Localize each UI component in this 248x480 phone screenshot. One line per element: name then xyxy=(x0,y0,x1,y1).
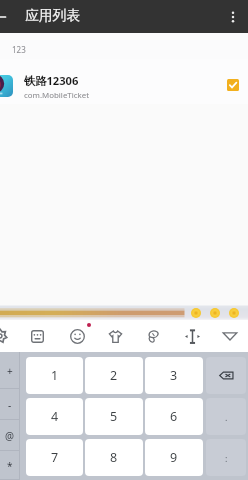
staticText: 3 xyxy=(170,367,178,384)
button[interactable]: Assistant xyxy=(22,320,52,352)
button[interactable]: Candidate 2 xyxy=(210,308,220,318)
staticText: . xyxy=(225,411,228,423)
button[interactable]: 7 xyxy=(26,439,83,476)
staticText: 4 xyxy=(51,408,59,425)
button[interactable]: - xyxy=(0,389,19,420)
staticText: @ xyxy=(5,429,14,443)
staticText: 应用列表 xyxy=(25,7,81,24)
button[interactable]: More options xyxy=(218,2,248,32)
button[interactable]: Handwriting xyxy=(138,320,168,352)
staticText: - xyxy=(8,398,12,412)
staticText: 2 xyxy=(110,367,118,384)
button[interactable]: 3 xyxy=(145,357,203,394)
button[interactable]: Back xyxy=(0,2,13,32)
staticText: 9 xyxy=(170,449,178,466)
staticText: 5 xyxy=(110,408,118,425)
button[interactable]: Backspace xyxy=(206,357,246,394)
button[interactable]: Candidate 3 xyxy=(229,308,239,318)
staticText: 铁路12306 xyxy=(24,73,79,88)
staticText: 1 xyxy=(51,367,59,384)
button[interactable]: 5 xyxy=(85,398,143,435)
button[interactable]: Selected xyxy=(221,73,245,97)
button[interactable]: Emoji xyxy=(62,320,92,352)
button[interactable]: @ xyxy=(0,420,19,451)
button[interactable]: * xyxy=(0,451,19,480)
staticText: com.MobileTicket xyxy=(24,90,90,101)
staticText: 7 xyxy=(51,449,59,466)
button[interactable]: 铁路12306 xyxy=(0,59,248,104)
button[interactable]: 8 xyxy=(85,439,143,476)
button[interactable]: Hide keyboard xyxy=(215,320,245,352)
button[interactable]: 4 xyxy=(26,398,83,435)
staticText: * xyxy=(7,459,13,473)
staticText: : xyxy=(225,452,228,464)
staticText: 8 xyxy=(110,449,118,466)
button[interactable]: Move cursor xyxy=(177,320,207,352)
button[interactable]: 2 xyxy=(85,357,143,394)
button[interactable]: 6 xyxy=(145,398,203,435)
button[interactable]: 1 xyxy=(26,357,83,394)
button[interactable]: 9 xyxy=(145,439,203,476)
button[interactable]: Skins xyxy=(100,320,130,352)
button[interactable]: Candidate 1 xyxy=(191,308,201,318)
staticText: + xyxy=(7,364,13,378)
staticText: 123 xyxy=(12,44,26,55)
button[interactable]: Settings xyxy=(0,320,15,352)
button[interactable]: + xyxy=(0,352,19,389)
staticText: 6 xyxy=(170,408,178,425)
